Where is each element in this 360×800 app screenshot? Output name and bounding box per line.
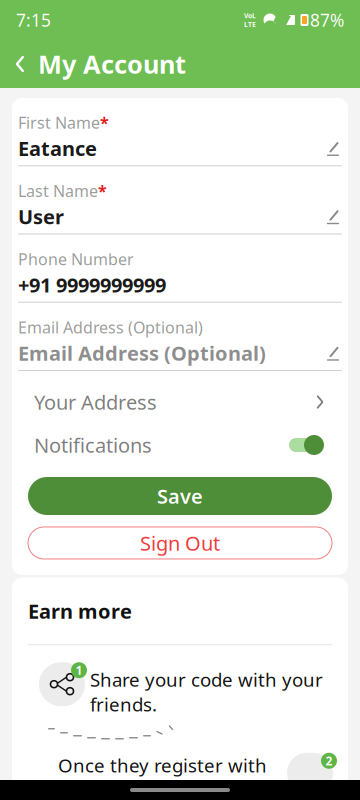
staticText: Sign Out [140, 530, 220, 556]
staticText: Once they register with your [58, 753, 267, 800]
staticText: Eatance [18, 135, 97, 162]
staticText: User [18, 203, 64, 230]
staticText: 87% [310, 8, 344, 31]
staticText: Share your code with your friends. [90, 667, 323, 717]
staticText: Email Address (Optional) [18, 317, 203, 338]
button[interactable]: Back to My Account [0, 40, 360, 88]
staticText: Save [157, 483, 203, 509]
button[interactable]: Your Address [18, 379, 342, 425]
staticText: Email Address (Optional) [18, 340, 266, 366]
staticText: 2 [325, 753, 332, 769]
staticText: 7:15 [16, 8, 51, 31]
staticText: My Account [38, 47, 186, 81]
staticText: 1 [75, 662, 82, 678]
staticText: * [100, 112, 109, 133]
staticText: Last Name [18, 180, 98, 201]
staticText: Notifications [34, 432, 152, 458]
button[interactable]: Notifications [18, 425, 342, 465]
staticText: +91 9999999999 [18, 271, 166, 298]
staticText: Phone Number [18, 248, 134, 270]
staticText: Your Address [34, 389, 157, 415]
staticText: * [98, 180, 107, 201]
staticText: VoL [244, 11, 256, 20]
staticText: Earn more [28, 598, 132, 624]
staticText: LTE [244, 20, 256, 29]
button[interactable]: Sign Out [28, 527, 332, 559]
button[interactable]: Save [28, 477, 332, 515]
staticText: First Name [18, 112, 100, 133]
